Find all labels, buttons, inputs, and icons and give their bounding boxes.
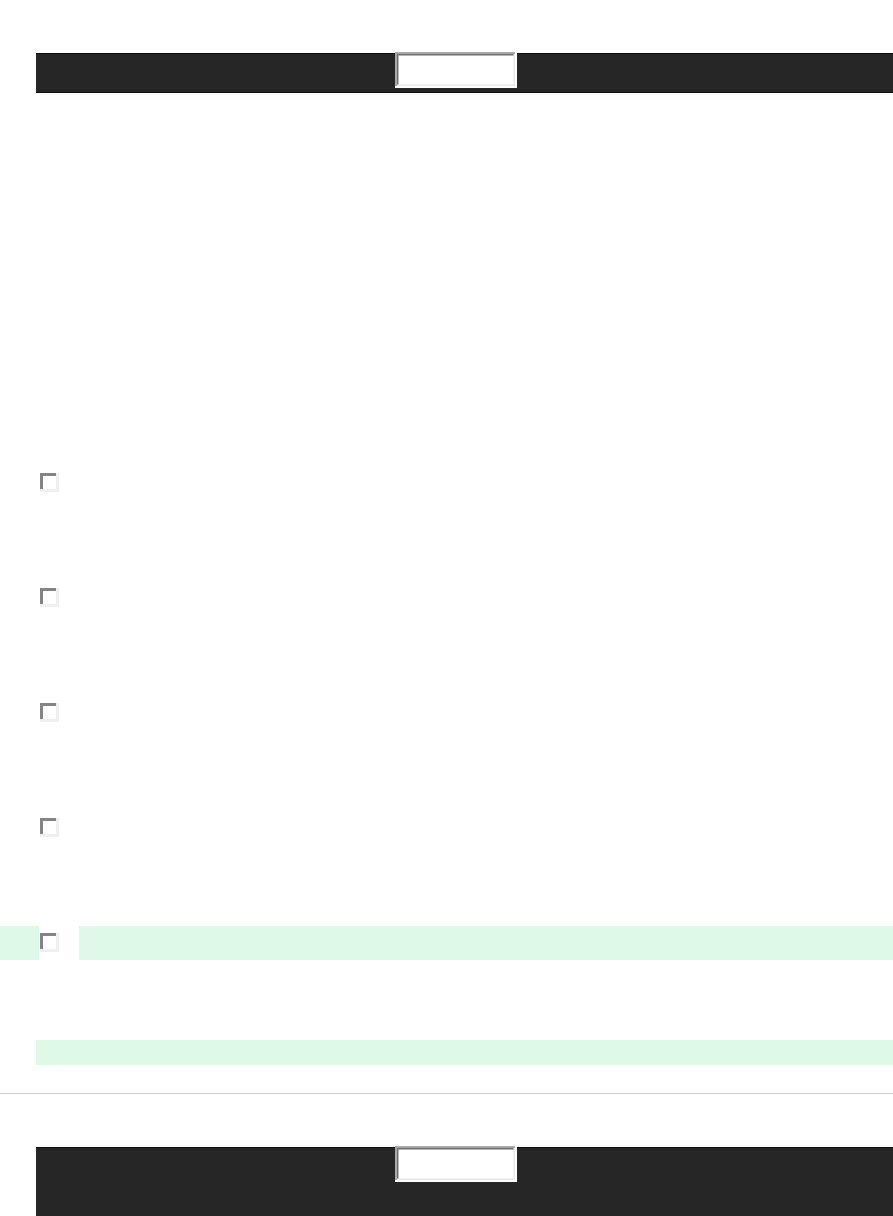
button[interactable]: Checkbox xyxy=(40,933,59,952)
button[interactable]: Search field xyxy=(395,52,517,88)
button[interactable]: Input field xyxy=(395,1146,517,1182)
button[interactable]: Checkbox xyxy=(40,588,59,607)
button[interactable]: Checkbox xyxy=(40,703,59,722)
button[interactable]: Checkbox xyxy=(40,473,59,492)
button[interactable]: Checkbox xyxy=(40,818,59,837)
